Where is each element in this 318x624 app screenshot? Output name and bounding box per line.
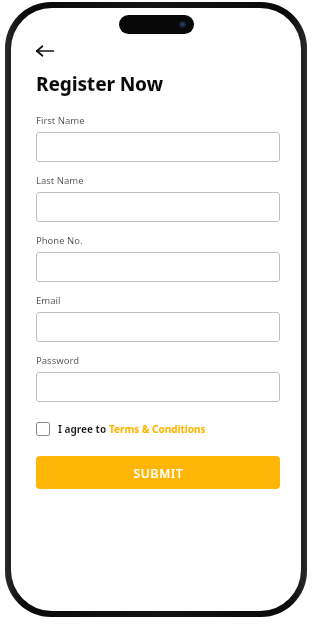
button[interactable] [36,192,280,222]
staticText: Phone No. [36,234,83,247]
button[interactable]: Back [36,40,64,62]
button[interactable] [36,372,280,402]
button[interactable]: I agree to [36,419,206,439]
staticText: First Name [36,114,85,127]
staticText: Password [36,354,79,367]
button[interactable]: Terms & Conditions [109,422,206,436]
button[interactable] [36,252,280,282]
staticText: Email [36,294,61,307]
staticText: Last Name [36,174,84,187]
button[interactable] [36,132,280,162]
staticText: Register Now [36,71,164,97]
button[interactable]: SUBMIT [36,456,280,489]
button[interactable] [36,312,280,342]
staticText: SUBMIT [133,465,184,481]
staticText: I agree to [58,422,109,436]
